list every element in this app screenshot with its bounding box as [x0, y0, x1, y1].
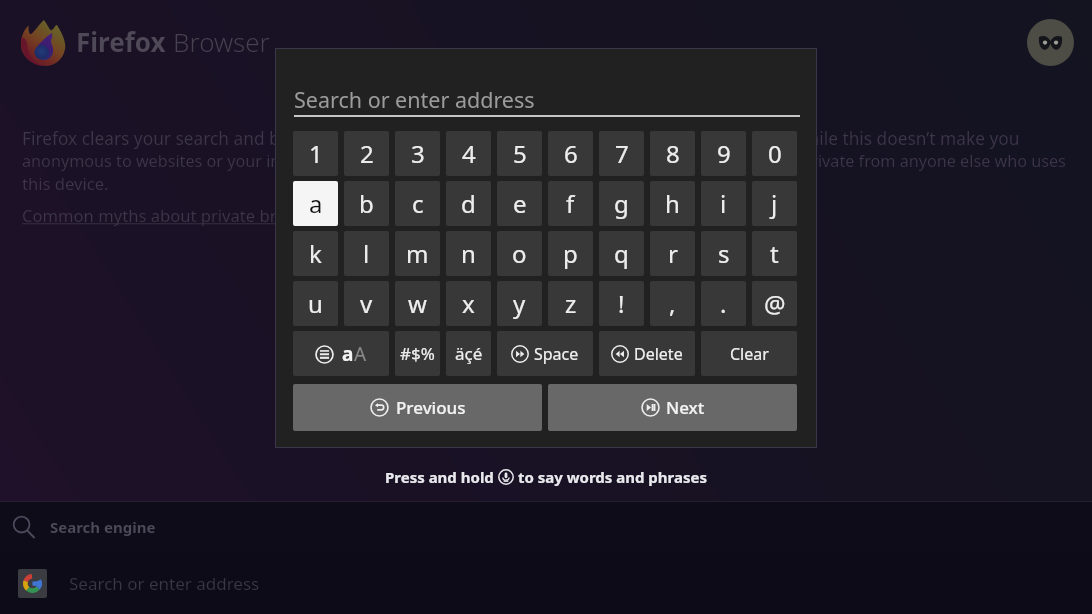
staticText: d [461, 187, 476, 220]
button[interactable]: l [344, 231, 389, 276]
button[interactable]: 3 [395, 131, 440, 176]
button[interactable]: d [446, 181, 491, 226]
button[interactable]: y [497, 281, 542, 326]
button[interactable]: #$% [395, 331, 440, 376]
staticText: x [462, 287, 475, 320]
staticText: 9 [717, 137, 731, 170]
button[interactable]: j [752, 181, 797, 226]
staticText: Firefox clears your search and browsing … [22, 127, 1020, 151]
staticText: . [720, 287, 727, 320]
staticText: Browser [173, 24, 270, 59]
staticText: a [309, 187, 323, 220]
button[interactable]: . [701, 281, 746, 326]
staticText: Delete [634, 343, 683, 365]
button[interactable]: t [752, 231, 797, 276]
button[interactable]: 8 [650, 131, 695, 176]
button[interactable]: u [293, 281, 338, 326]
staticText: b [359, 187, 374, 220]
button[interactable]: m [395, 231, 440, 276]
staticText: 3 [411, 137, 425, 170]
button[interactable]: 6 [548, 131, 593, 176]
button[interactable]: Private browsing [1027, 19, 1074, 66]
staticText: #$% [400, 342, 435, 365]
button[interactable]: , [650, 281, 695, 326]
button[interactable]: r [650, 231, 695, 276]
button[interactable]: Toggle case [293, 331, 389, 376]
button[interactable]: f [548, 181, 593, 226]
staticText: A [354, 341, 367, 367]
staticText: f [566, 187, 575, 220]
button[interactable]: b [344, 181, 389, 226]
button[interactable]: Clear [701, 331, 797, 376]
button[interactable]: a [293, 181, 338, 226]
staticText: 1 [309, 137, 323, 170]
button[interactable]: Search engine [0, 502, 1092, 552]
button[interactable]: v [344, 281, 389, 326]
staticText: Previous [396, 396, 466, 419]
button[interactable]: 7 [599, 131, 644, 176]
staticText: q [614, 237, 629, 270]
staticText: Clear [730, 343, 769, 365]
button[interactable]: p [548, 231, 593, 276]
button[interactable]: Previous [293, 384, 542, 431]
button[interactable]: s [701, 231, 746, 276]
button[interactable]: i [701, 181, 746, 226]
button[interactable]: äçé [446, 331, 491, 376]
staticText: Space [534, 343, 579, 365]
staticText: Press and hold [385, 467, 498, 487]
staticText: p [563, 237, 578, 270]
staticText: äçé [455, 342, 483, 365]
button[interactable]: n [446, 231, 491, 276]
staticText: @ [764, 287, 786, 320]
button[interactable]: w [395, 281, 440, 326]
staticText: 7 [615, 137, 629, 170]
staticText: w [408, 287, 427, 320]
button[interactable]: @ [752, 281, 797, 326]
staticText: ! [618, 287, 625, 320]
staticText: s [718, 237, 730, 270]
staticText: n [461, 237, 476, 270]
staticText: 6 [564, 137, 578, 170]
other: Toggle case [315, 341, 367, 367]
button[interactable]: 5 [497, 131, 542, 176]
button[interactable]: q [599, 231, 644, 276]
button[interactable]: Delete [599, 331, 695, 376]
button[interactable]: e [497, 181, 542, 226]
staticText: c [412, 187, 424, 220]
button[interactable]: 1 [293, 131, 338, 176]
button[interactable]: 0 [752, 131, 797, 176]
staticText: i [720, 187, 727, 220]
staticText: 4 [462, 137, 476, 170]
staticText: j [771, 187, 778, 220]
staticText: r [668, 237, 678, 270]
button[interactable]: Next [548, 384, 797, 431]
button[interactable]: 9 [701, 131, 746, 176]
staticText: Search or enter address [294, 85, 535, 114]
button[interactable]: Space [497, 331, 593, 376]
button[interactable]: z [548, 281, 593, 326]
staticText: h [665, 187, 680, 220]
staticText: t [770, 237, 779, 270]
button[interactable]: c [395, 181, 440, 226]
staticText: g [614, 187, 629, 220]
button[interactable]: h [650, 181, 695, 226]
other: Next [641, 396, 705, 419]
button[interactable]: 4 [446, 131, 491, 176]
staticText: 2 [360, 137, 374, 170]
staticText: v [360, 287, 373, 320]
button[interactable]: g [599, 181, 644, 226]
staticText: 8 [666, 137, 680, 170]
button[interactable]: 2 [344, 131, 389, 176]
staticText: m [406, 237, 429, 270]
button[interactable]: ! [599, 281, 644, 326]
button[interactable]: k [293, 231, 338, 276]
staticText: , [669, 287, 676, 320]
staticText: this device. [22, 172, 109, 195]
staticText: u [308, 287, 323, 320]
button[interactable]: Search or enter address [0, 552, 1092, 614]
staticText: y [513, 287, 526, 320]
button[interactable]: Common myths about private browsing [22, 204, 332, 227]
staticText: Next [666, 396, 705, 419]
button[interactable]: x [446, 281, 491, 326]
button[interactable]: o [497, 231, 542, 276]
